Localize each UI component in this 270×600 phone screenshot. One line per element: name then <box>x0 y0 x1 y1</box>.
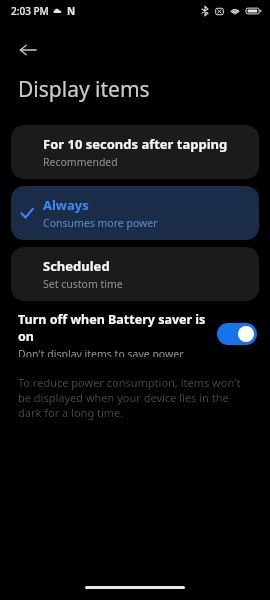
staticText: Turn off when Battery saver is on <box>18 311 209 345</box>
staticText: To reduce power consumption, items won't… <box>18 375 242 420</box>
staticText: Don't display items to save power <box>18 347 184 357</box>
button[interactable]: Scheduled <box>11 247 259 301</box>
button[interactable]: Turn off when Battery saver is on toggle <box>217 323 257 345</box>
button[interactable]: Always <box>11 186 259 240</box>
staticText: Always <box>43 196 89 214</box>
button[interactable]: Turn off when Battery saver is on <box>0 311 270 357</box>
staticText: Scheduled <box>43 257 110 275</box>
staticText: 2:03 PM <box>11 4 49 18</box>
staticText: N <box>67 4 76 18</box>
button[interactable]: For 10 seconds after tapping <box>11 125 259 179</box>
staticText: For 10 seconds after tapping <box>43 135 228 153</box>
staticText: Display items <box>18 75 150 104</box>
staticText: Consumes more power <box>43 216 158 230</box>
button[interactable]: Back <box>8 30 48 70</box>
staticText: Recommended <box>43 155 118 169</box>
staticText: Set custom time <box>43 277 123 291</box>
